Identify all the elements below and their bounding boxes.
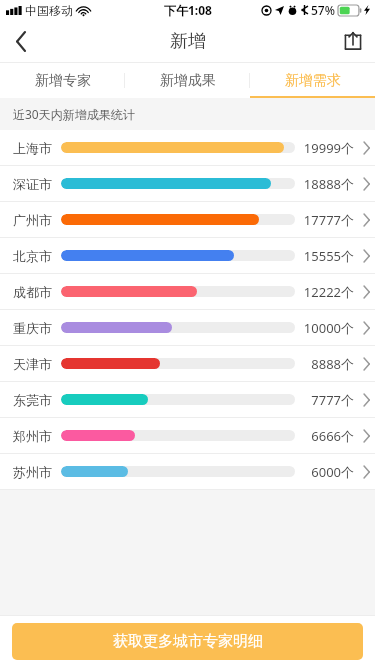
- button[interactable]: 重庆市: [0, 310, 375, 346]
- staticText: 新增成果: [160, 72, 216, 90]
- staticText: 获取更多城市专家明细: [113, 632, 263, 651]
- button[interactable]: 东莞市: [0, 382, 375, 418]
- button[interactable]: Share: [331, 20, 375, 62]
- button[interactable]: 获取更多城市专家明细: [12, 623, 363, 660]
- staticText: 北京市: [13, 248, 61, 264]
- button[interactable]: Back: [0, 20, 42, 62]
- staticText: 重庆市: [13, 320, 61, 336]
- staticText: 7777个: [311, 391, 354, 409]
- staticText: 6000个: [311, 463, 354, 481]
- button[interactable]: 新增需求: [250, 63, 375, 98]
- staticText: 新增专家: [35, 72, 91, 90]
- button[interactable]: 郑州市: [0, 418, 375, 454]
- staticText: 12222个: [303, 283, 354, 301]
- staticText: 成都市: [13, 284, 61, 300]
- staticText: 19999个: [303, 139, 354, 157]
- button[interactable]: 广州市: [0, 202, 375, 238]
- staticText: 10000个: [303, 319, 354, 337]
- staticText: 深证市: [13, 176, 61, 192]
- staticText: 新增: [170, 30, 206, 53]
- button[interactable]: 深证市: [0, 166, 375, 202]
- staticText: 17777个: [303, 211, 354, 229]
- staticText: 中国移动: [25, 3, 73, 18]
- button[interactable]: 北京市: [0, 238, 375, 274]
- button[interactable]: 新增成果: [125, 63, 250, 98]
- staticText: 下午1:08: [164, 2, 212, 18]
- staticText: 6666个: [311, 427, 354, 445]
- button[interactable]: 上海市: [0, 130, 375, 166]
- staticText: 近30天内新增成果统计: [13, 106, 135, 122]
- button[interactable]: 天津市: [0, 346, 375, 382]
- staticText: 东莞市: [13, 392, 61, 408]
- staticText: 苏州市: [13, 464, 61, 480]
- staticText: 18888个: [303, 175, 354, 193]
- button[interactable]: 成都市: [0, 274, 375, 310]
- staticText: 57%: [311, 2, 335, 18]
- staticText: 15555个: [303, 247, 354, 265]
- staticText: 新增需求: [285, 72, 341, 90]
- staticText: 8888个: [311, 355, 354, 373]
- button[interactable]: 新增专家: [0, 63, 125, 98]
- staticText: 天津市: [13, 356, 61, 372]
- staticText: 广州市: [13, 212, 61, 228]
- staticText: 上海市: [13, 140, 61, 156]
- staticText: 郑州市: [13, 428, 61, 444]
- button[interactable]: 苏州市: [0, 454, 375, 490]
